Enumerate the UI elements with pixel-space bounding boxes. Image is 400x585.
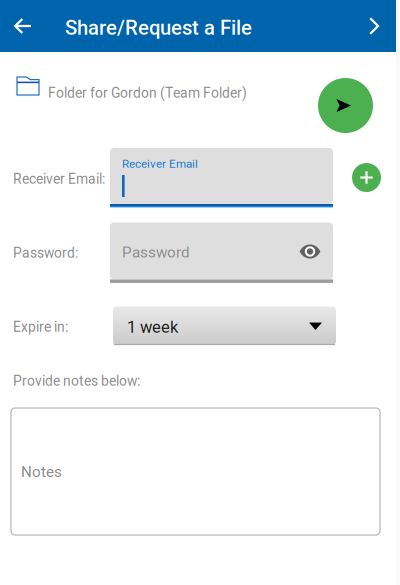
staticText: Receiver Email — [122, 157, 198, 171]
staticText: Expire in: — [13, 319, 68, 335]
staticText: Receiver Email: — [13, 171, 105, 187]
button[interactable]: Receiver Email — [110, 146, 333, 206]
button[interactable]: Send file — [318, 78, 373, 133]
staticText: Share/Request a File — [65, 16, 252, 40]
button[interactable]: Next — [356, 0, 392, 52]
staticText: Password — [122, 243, 190, 261]
button[interactable]: Notes — [11, 408, 380, 535]
staticText: Provide notes below: — [13, 373, 140, 389]
button[interactable]: Add recipient — [352, 163, 381, 192]
staticText: Folder for Gordon (Team Folder) — [48, 85, 247, 101]
button[interactable]: 1 week — [113, 306, 336, 345]
staticText: Password: — [13, 245, 78, 261]
button[interactable]: Back — [5, 0, 41, 52]
button[interactable]: Password — [110, 221, 333, 281]
staticText: 1 week — [127, 317, 178, 337]
staticText: Notes — [21, 463, 62, 481]
